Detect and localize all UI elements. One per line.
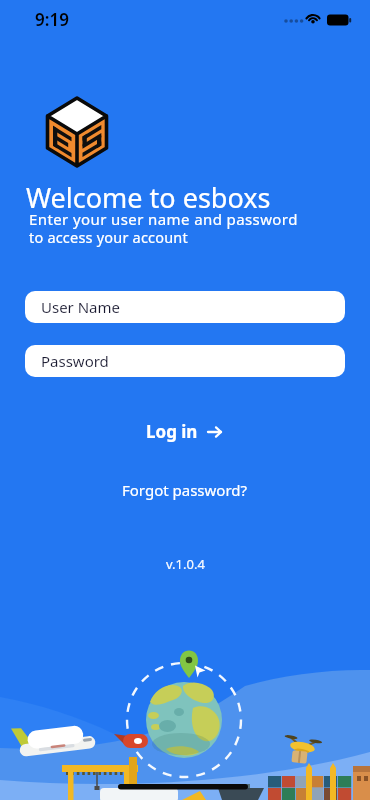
staticText: Forgot password? [122,480,248,500]
staticText: Enter your user name and password [29,209,298,229]
button[interactable]: Log in [146,420,224,443]
staticText: 9:19 [35,8,69,31]
staticText: v.1.0.4 [166,555,205,573]
staticText: to access your account [29,227,188,247]
button[interactable]: Forgot password? [122,480,248,500]
button[interactable]: User Name [25,291,345,323]
staticText: Password [41,351,109,371]
staticText: User Name [41,297,121,317]
staticText: Log in [146,420,198,443]
button[interactable]: Password [25,345,345,377]
staticText: Welcome to esboxs [26,179,271,216]
